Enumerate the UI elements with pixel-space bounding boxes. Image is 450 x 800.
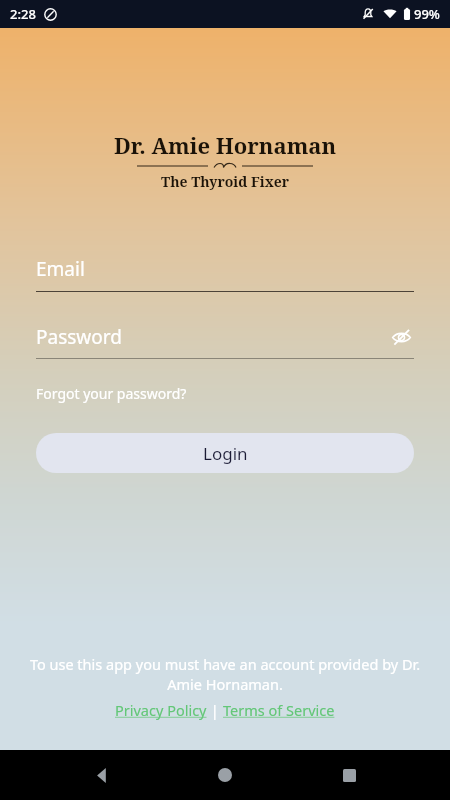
button[interactable]: Back	[80, 753, 124, 797]
staticText: 2:28	[10, 5, 36, 23]
staticText: |	[207, 700, 223, 720]
staticText: Password	[36, 324, 388, 350]
button[interactable]: Login	[36, 433, 414, 473]
button[interactable]: Password	[36, 324, 414, 359]
button[interactable]: Privacy Policy	[115, 700, 207, 720]
staticText: Privacy Policy	[115, 700, 207, 720]
staticText: Terms of Service	[223, 700, 335, 720]
button[interactable]: Forgot your password?	[36, 382, 187, 405]
staticText: Email	[36, 256, 85, 282]
button[interactable]: Home	[203, 753, 247, 797]
button[interactable]: Recent apps	[327, 753, 371, 797]
staticText: Dr. Amie Hornaman	[114, 130, 337, 160]
button[interactable]: Terms of Service	[223, 700, 335, 720]
staticText: Forgot your password?	[36, 384, 187, 403]
staticText: Login	[203, 442, 248, 465]
button[interactable]: Show password	[388, 324, 414, 350]
button[interactable]: Email	[36, 256, 414, 292]
staticText: The Thyroid Fixer	[161, 172, 290, 191]
staticText: 99%	[414, 5, 440, 23]
staticText: To use this app you must have an account…	[28, 654, 422, 694]
